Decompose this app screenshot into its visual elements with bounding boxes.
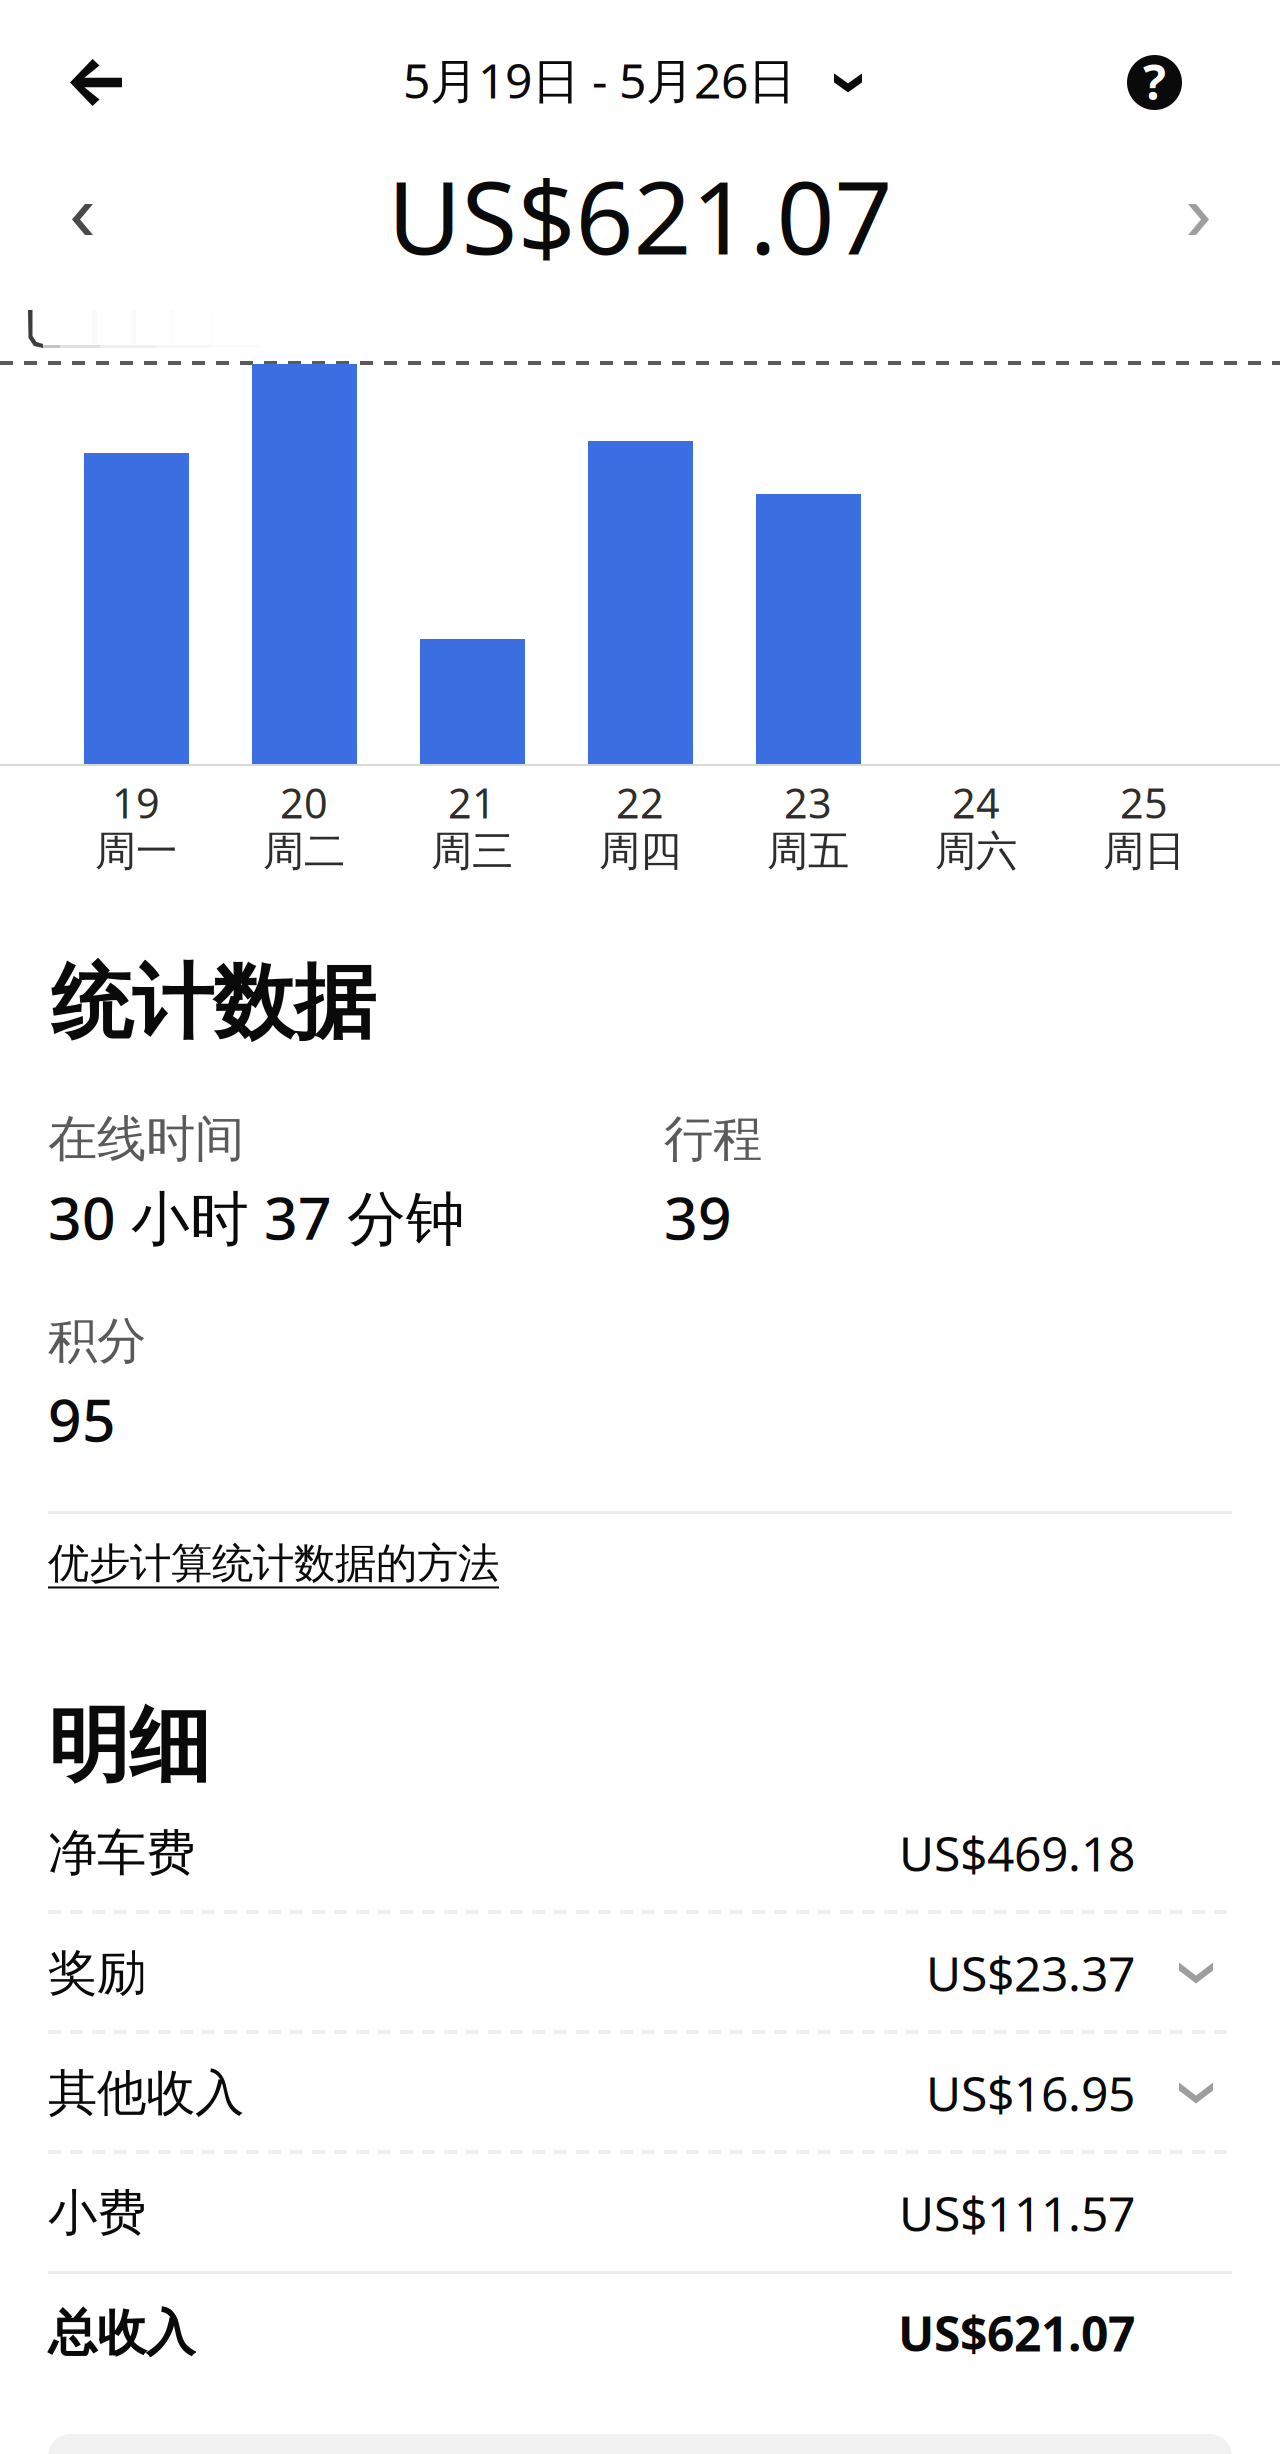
- staticText: 20: [280, 775, 328, 830]
- staticText: 统计数据: [51, 953, 375, 1053]
- staticText: 其他收入: [48, 2063, 244, 2123]
- staticText: 22: [616, 775, 664, 830]
- button[interactable]: 奖励: [0, 1914, 1280, 2032]
- staticText: US$469.18: [899, 1821, 1135, 1885]
- staticText: 周三: [431, 826, 513, 877]
- button[interactable]: Next week: [1162, 178, 1235, 261]
- staticText: 周二: [263, 826, 345, 877]
- staticText: 周日: [1103, 826, 1185, 877]
- staticText: 优步计算统计数据的方法: [48, 1538, 499, 1589]
- staticText: 95: [48, 1380, 116, 1458]
- staticText: 净车费: [48, 1823, 195, 1883]
- staticText: 周一: [95, 826, 177, 877]
- staticText: 周四: [599, 826, 681, 877]
- staticText: 小费: [48, 2183, 146, 2243]
- button[interactable]: Previous week: [46, 178, 119, 261]
- button[interactable]: 5月19日 - 5月26日: [391, 22, 874, 138]
- staticText: 周五: [767, 826, 849, 877]
- button[interactable]: 小费: [0, 2154, 1280, 2272]
- staticText: 39: [664, 1178, 732, 1256]
- staticText: 行程: [664, 1109, 762, 1169]
- staticText: 5月19日 - 5月26日: [403, 48, 796, 112]
- staticText: US$23.37: [926, 1941, 1135, 2005]
- staticText: US$621.07: [898, 2301, 1135, 2365]
- staticText: US$111.57: [899, 2181, 1135, 2245]
- staticText: 25: [1120, 775, 1168, 830]
- staticText: ?: [1143, 50, 1166, 113]
- staticText: 在线时间: [48, 1109, 244, 1169]
- staticText: 明细: [48, 1696, 210, 1796]
- staticText: 奖励: [48, 1943, 146, 2003]
- staticText: 30 小时 37 分钟: [48, 1178, 465, 1256]
- staticText: 19: [112, 775, 160, 830]
- button[interactable]: Help: [1109, 37, 1200, 128]
- staticText: 总收入: [48, 2303, 195, 2363]
- button[interactable]: 总收入: [0, 2274, 1280, 2392]
- staticText: 21: [448, 775, 496, 830]
- button[interactable]: 净车费: [0, 1794, 1280, 1912]
- button[interactable]: 其他收入: [0, 2034, 1280, 2152]
- staticText: 周六: [935, 826, 1017, 877]
- staticText: US$621.07: [387, 148, 892, 283]
- staticText: 24: [952, 775, 1000, 830]
- staticText: 23: [784, 775, 832, 830]
- staticText: 积分: [48, 1311, 146, 1371]
- staticText: US$16.95: [926, 2061, 1135, 2125]
- button[interactable]: 优步计算统计数据的方法: [44, 1520, 503, 1607]
- button[interactable]: Back: [44, 29, 148, 136]
